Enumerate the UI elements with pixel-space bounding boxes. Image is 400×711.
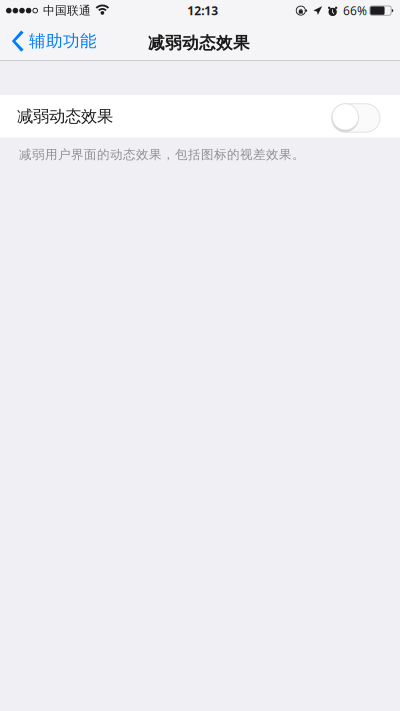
staticText: 减弱用户界面的动态效果，包括图标的视差效果。	[19, 147, 305, 162]
staticText: 66%	[343, 2, 367, 19]
button[interactable]: 辅助功能	[0, 21, 107, 61]
staticText: 减弱动态效果	[17, 106, 113, 127]
staticText: 12:13	[187, 2, 218, 19]
staticText: 减弱动态效果	[148, 33, 250, 53]
staticText: 辅助功能	[29, 31, 97, 51]
button[interactable]: 减弱动态效果	[0, 95, 400, 138]
staticText: 中国联通	[43, 3, 91, 18]
